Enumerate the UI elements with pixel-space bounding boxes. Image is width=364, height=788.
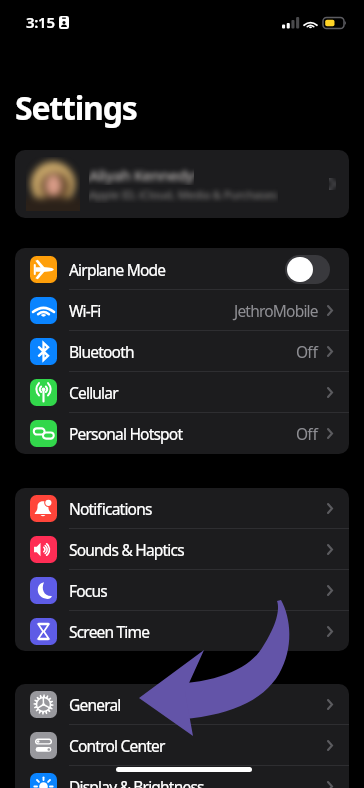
button[interactable]: Control Center bbox=[15, 725, 349, 765]
staticText: Focus bbox=[69, 580, 107, 601]
button[interactable]: Apple ID profile bbox=[15, 150, 349, 218]
staticText: Settings bbox=[15, 86, 137, 130]
button[interactable]: Focus bbox=[15, 570, 349, 610]
button[interactable]: Cellular bbox=[15, 372, 349, 412]
button[interactable]: Bluetooth bbox=[15, 331, 349, 371]
button[interactable]: Notifications bbox=[15, 488, 349, 528]
button[interactable]: Sounds & Haptics bbox=[15, 529, 349, 569]
staticText: Airplane Mode bbox=[69, 259, 166, 280]
staticText: Personal Hotspot bbox=[69, 423, 183, 444]
button[interactable]: Airplane Mode toggle bbox=[285, 255, 330, 284]
staticText: Wi-Fi bbox=[69, 300, 101, 321]
staticText: Display & Brightness bbox=[69, 776, 204, 788]
button[interactable]: Personal Hotspot bbox=[15, 413, 349, 453]
staticText: Cellular bbox=[69, 382, 118, 403]
staticText: Off bbox=[296, 423, 318, 444]
staticText: General bbox=[69, 694, 121, 715]
button[interactable]: Screen Time bbox=[15, 611, 349, 651]
staticText: Bluetooth bbox=[69, 341, 134, 362]
button[interactable]: General bbox=[15, 684, 349, 724]
staticText: Screen Time bbox=[69, 621, 150, 642]
staticText: Notifications bbox=[69, 498, 152, 519]
button[interactable]: Display & Brightness bbox=[15, 766, 349, 788]
staticText: Apple ID, iCloud, Media & Purchases bbox=[89, 187, 278, 203]
staticText: Control Center bbox=[69, 735, 165, 756]
staticText: 3:15 bbox=[26, 12, 55, 32]
button[interactable]: Airplane Mode bbox=[15, 249, 349, 289]
staticText: Sounds & Haptics bbox=[69, 539, 184, 560]
staticText: JethroMobile bbox=[234, 300, 318, 321]
staticText: Aliyah Kennedy bbox=[89, 165, 194, 185]
staticText: Off bbox=[296, 341, 318, 362]
button[interactable]: Wi-Fi bbox=[15, 290, 349, 330]
